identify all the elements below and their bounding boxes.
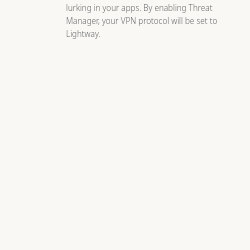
staticText: lurking in your apps. By enabling Threat… (66, 2, 234, 40)
